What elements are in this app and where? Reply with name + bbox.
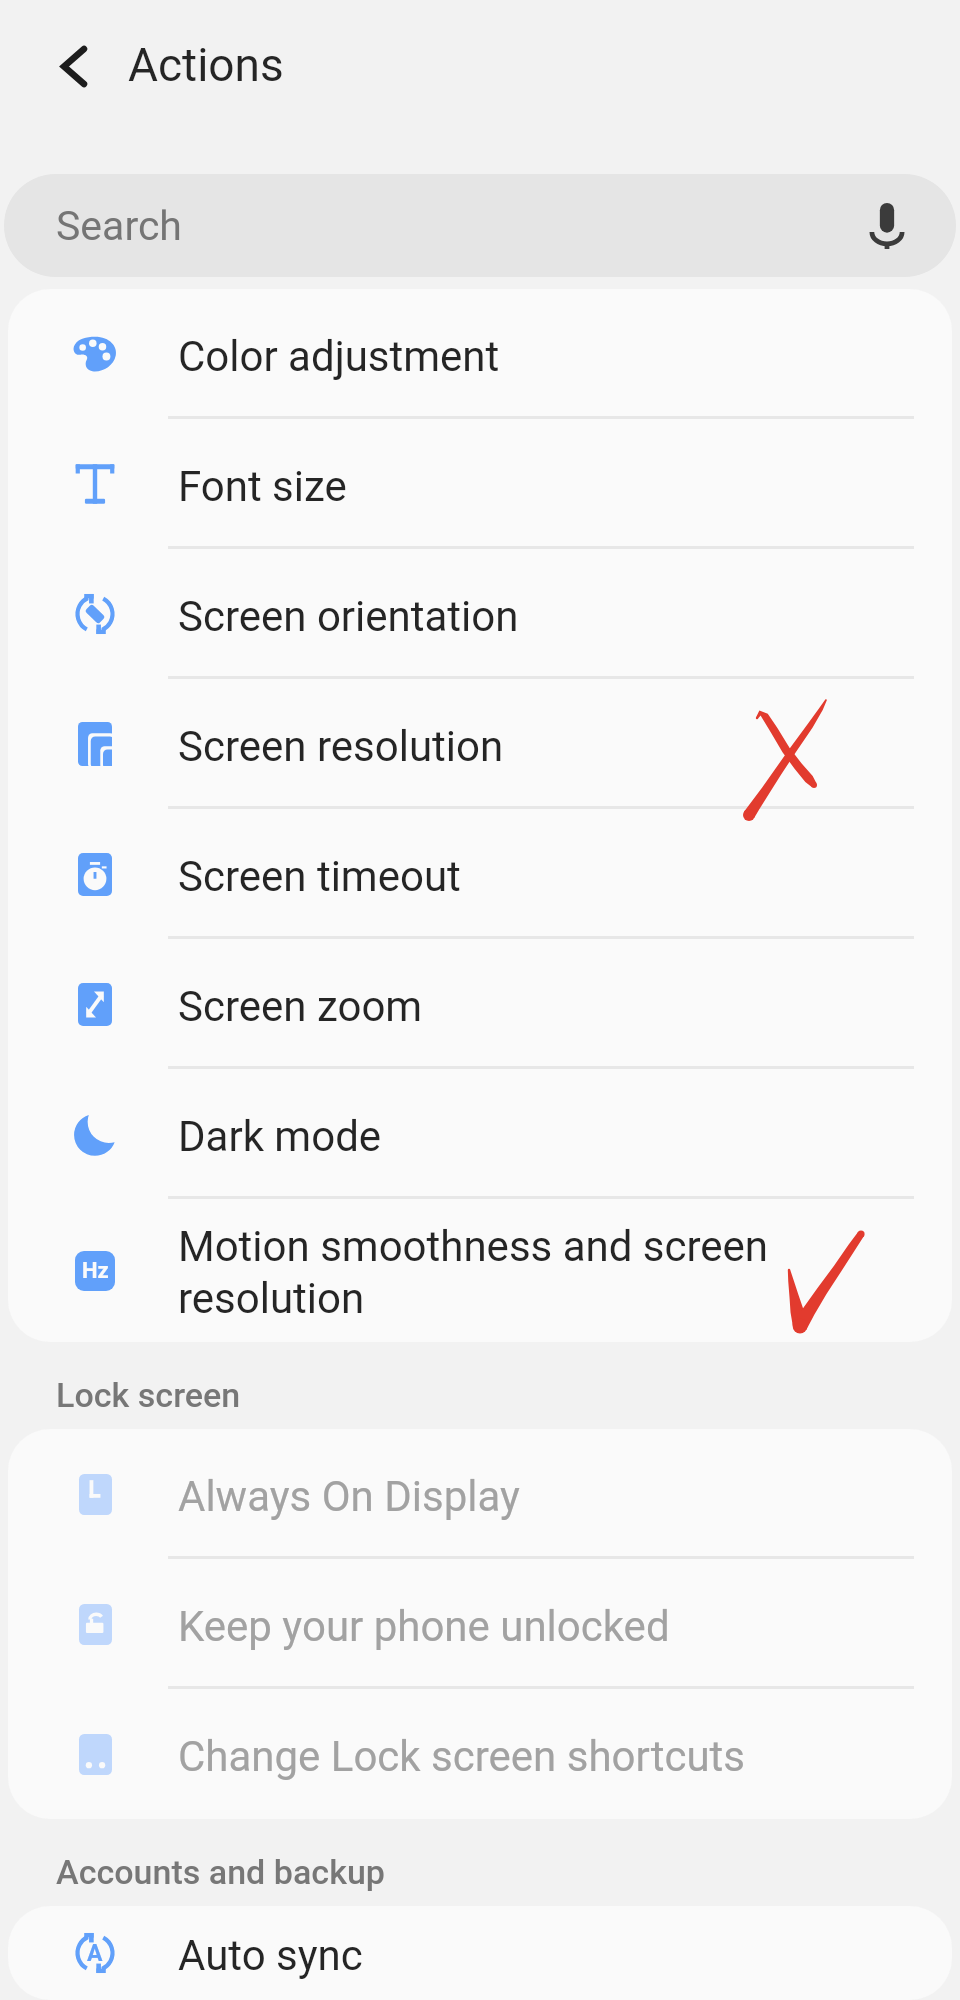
staticText: Screen zoom xyxy=(178,982,423,1031)
button[interactable]: A xyxy=(8,1906,952,2000)
button[interactable]: Voice search xyxy=(870,203,904,249)
staticText: Screen timeout xyxy=(178,852,461,901)
staticText: Hz xyxy=(82,1258,109,1284)
button[interactable]: Always On Display xyxy=(8,1429,952,1559)
staticText: Actions xyxy=(128,38,284,92)
button[interactable]: Screen timeout xyxy=(8,809,952,939)
staticText: Motion smoothness and screen resolution xyxy=(178,1222,769,1323)
staticText: Auto sync xyxy=(178,1931,363,1980)
button[interactable]: Color adjustment xyxy=(8,289,952,419)
button[interactable]: Search xyxy=(4,174,956,277)
staticText: Always On Display xyxy=(178,1472,520,1521)
staticText: Screen orientation xyxy=(178,592,519,641)
staticText: Font size xyxy=(178,462,347,511)
button[interactable]: Screen orientation xyxy=(8,549,952,679)
button[interactable]: Change Lock screen shortcuts xyxy=(8,1689,952,1819)
button[interactable]: Back xyxy=(34,26,114,106)
staticText: Change Lock screen shortcuts xyxy=(178,1732,746,1781)
button[interactable]: Font size xyxy=(8,419,952,549)
staticText: A xyxy=(87,1940,103,1967)
staticText: Accounts and backup xyxy=(56,1852,385,1892)
staticText: Keep your phone unlocked xyxy=(178,1602,670,1651)
button[interactable]: Screen zoom xyxy=(8,939,952,1069)
button[interactable]: Hz xyxy=(8,1199,952,1342)
button[interactable]: Screen resolution xyxy=(8,679,952,809)
staticText: Color adjustment xyxy=(178,332,500,381)
button[interactable]: Dark mode xyxy=(8,1069,952,1199)
staticText: Screen resolution xyxy=(178,722,504,771)
button[interactable]: Keep your phone unlocked xyxy=(8,1559,952,1689)
staticText: Search xyxy=(56,202,182,250)
staticText: Dark mode xyxy=(178,1112,382,1161)
staticText: Lock screen xyxy=(56,1375,241,1415)
